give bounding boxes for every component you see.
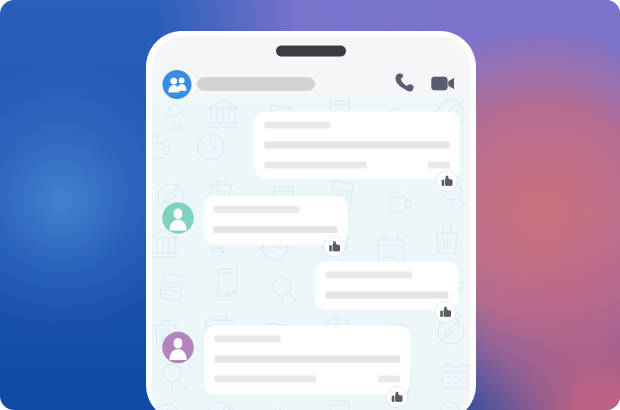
button[interactable]: Video call — [429, 72, 457, 94]
button[interactable]: Audio call — [391, 69, 417, 95]
button[interactable]: Message — [203, 196, 347, 244]
button[interactable]: Message — [204, 325, 410, 395]
button[interactable]: Group info — [160, 67, 194, 101]
button[interactable]: Message — [254, 111, 460, 179]
button[interactable]: Message — [315, 261, 458, 310]
